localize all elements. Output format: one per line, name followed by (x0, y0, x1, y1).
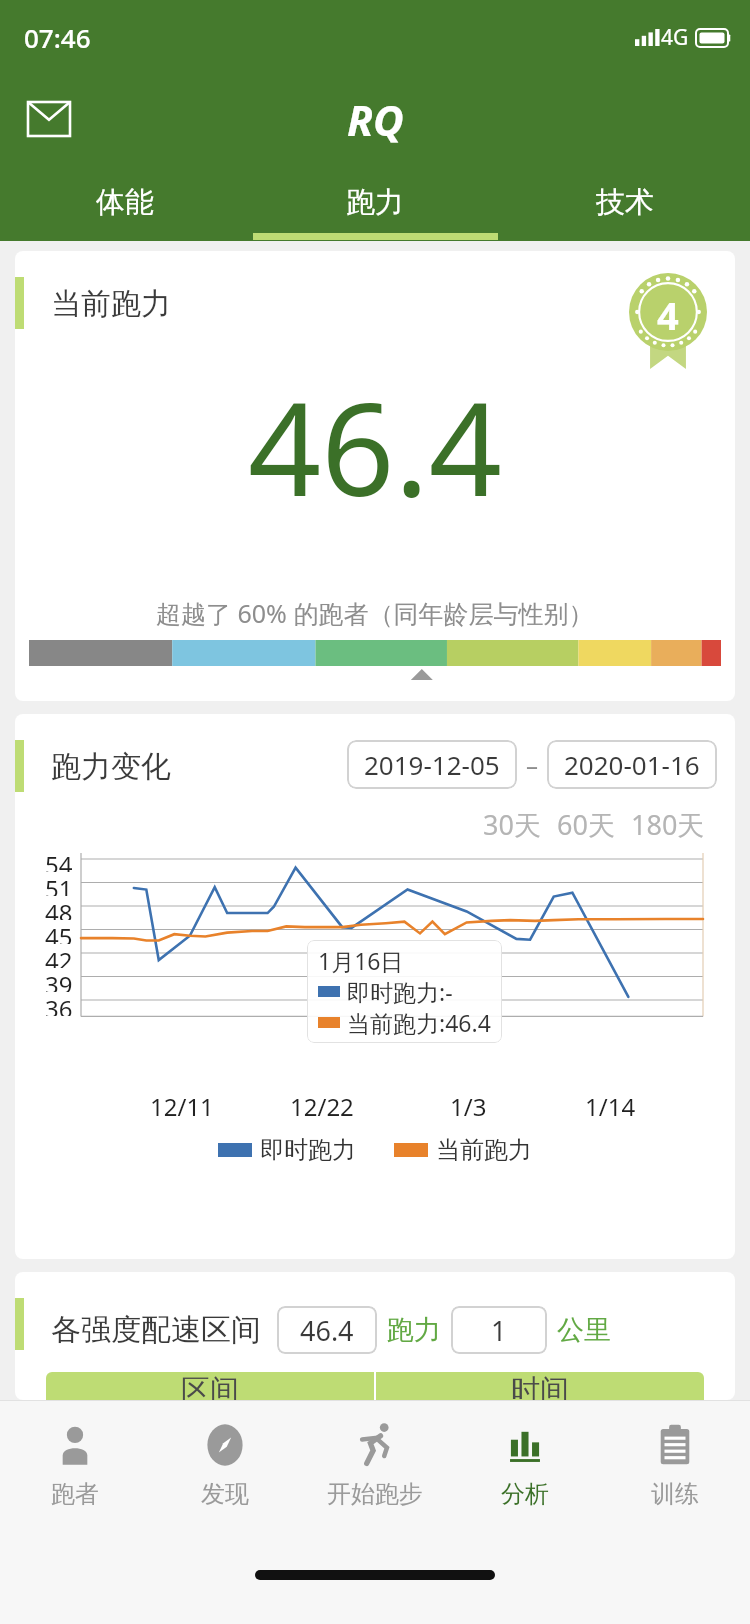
staticText: 训练 (651, 1479, 699, 1509)
button[interactable]: 180天 (623, 806, 713, 843)
button[interactable]: 体能 (0, 163, 250, 241)
staticText: 超越了 60% 的跑者（同年龄层与性别） (156, 596, 594, 630)
staticText: 当前跑力:46.4 (347, 1007, 491, 1038)
staticText: 1/14 (585, 1090, 636, 1123)
staticText: 2019-12-05 (364, 747, 500, 782)
staticText: – (526, 748, 538, 781)
button[interactable]: 跑力变化 (15, 714, 735, 1259)
staticText: 跑者 (51, 1479, 99, 1509)
button[interactable]: 60天 (549, 806, 623, 843)
staticText: 区间 (181, 1372, 239, 1400)
staticText: 开始跑步 (327, 1479, 423, 1509)
button[interactable]: 46.4 (277, 1306, 377, 1354)
staticText: 1月16日 (318, 945, 404, 976)
staticText: 46.4 (300, 1312, 354, 1349)
staticText: 各强度配速区间 (51, 1311, 261, 1349)
button[interactable]: 2020-01-16 (547, 740, 717, 789)
button[interactable]: 技术 (500, 163, 750, 241)
button[interactable]: 时间 (376, 1372, 704, 1400)
staticText: 技术 (596, 184, 654, 221)
staticText: 30天 (483, 806, 541, 843)
staticText: 跑力变化 (51, 748, 171, 786)
staticText: 39 (45, 968, 73, 992)
staticText: 即时跑力 (260, 1135, 356, 1165)
button[interactable]: 1 (451, 1306, 547, 1354)
button[interactable]: 30天 (475, 806, 549, 843)
staticText: 48 (45, 896, 73, 920)
staticText: 跑力 (346, 184, 404, 221)
staticText: 1/3 (450, 1090, 487, 1123)
button[interactable]: 2019-12-05 (347, 740, 517, 789)
button[interactable]: 发现 (150, 1401, 300, 1526)
staticText: 12/22 (290, 1090, 354, 1123)
button[interactable]: 训练 (600, 1401, 750, 1526)
staticText: RQ (347, 91, 404, 148)
staticText: 51 (45, 872, 73, 896)
button[interactable]: 分析 (450, 1401, 600, 1526)
staticText: 时间 (511, 1372, 569, 1400)
staticText: 发现 (201, 1479, 249, 1509)
staticText: 12/11 (150, 1090, 214, 1123)
staticText: 1 (491, 1312, 507, 1349)
button[interactable]: 区间 (46, 1372, 374, 1400)
staticText: 当前跑力 (436, 1135, 532, 1165)
staticText: 2020-01-16 (564, 747, 700, 782)
staticText: 即时跑力:- (347, 976, 453, 1007)
staticText: 跑力 (387, 1313, 441, 1347)
staticText: 36 (45, 992, 73, 1016)
staticText: 体能 (96, 184, 154, 221)
staticText: 4 (657, 289, 679, 341)
staticText: 42 (45, 944, 73, 968)
staticText: 180天 (631, 806, 705, 843)
button[interactable]: 跑力 (250, 163, 500, 241)
button[interactable]: 当前跑力 (15, 251, 735, 701)
staticText: 4G (661, 23, 689, 52)
button[interactable]: 各强度配速区间 (15, 1272, 735, 1400)
staticText: 公里 (557, 1313, 611, 1347)
button[interactable]: Messages (20, 90, 78, 148)
staticText: 54 (45, 848, 73, 872)
staticText: 分析 (501, 1479, 549, 1509)
button[interactable]: Running Quotient level 4 badge (629, 273, 707, 369)
button[interactable]: 开始跑步 (300, 1401, 450, 1526)
staticText: 当前跑力 (51, 285, 171, 323)
button[interactable]: 跑者 (0, 1401, 150, 1526)
staticText: 07:46 (24, 20, 91, 55)
staticText: 60天 (557, 806, 615, 843)
staticText: 45 (45, 920, 73, 944)
staticText: 46.4 (248, 359, 502, 533)
